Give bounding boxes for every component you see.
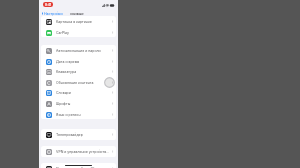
button[interactable]: Телепровайдер (41, 129, 116, 140)
staticText: Шрифты (56, 102, 110, 106)
button[interactable]: Язык и регион (41, 109, 116, 119)
button[interactable]: VPN и управление устройств… (41, 146, 116, 157)
staticText: Дата и время (56, 60, 110, 64)
button[interactable]: Дата и время (41, 56, 116, 67)
staticText: VPN и управление устройств… (56, 150, 110, 154)
button[interactable]: Клавиатура (41, 66, 116, 77)
staticText: Клавиатура (56, 70, 110, 74)
staticText: 9:41 (45, 3, 52, 7)
staticText: Телепровайдер (56, 133, 110, 137)
staticText: CarPlay (56, 31, 110, 35)
staticText: Картинка в картинке (56, 20, 110, 24)
button[interactable]: Автозаполнение и пароли (41, 45, 116, 56)
button[interactable]: Настройки (41, 11, 63, 16)
staticText: Обновление контента (56, 81, 110, 85)
button[interactable]: Перенос или сброс iPhone (41, 163, 116, 168)
button[interactable]: Картинка в картинке (41, 16, 116, 27)
staticText: Перенос или сброс iPhone (56, 167, 110, 168)
staticText: Основные (70, 12, 84, 15)
button[interactable]: Словари (41, 87, 116, 98)
button[interactable]: CarPlay (41, 27, 116, 37)
staticText: Словари (56, 91, 110, 95)
button[interactable]: Обновление контента (41, 77, 116, 88)
staticText: Настройки (44, 12, 63, 16)
staticText: Автозаполнение и пароли (56, 49, 110, 53)
staticText: Язык и регион (56, 113, 110, 117)
button[interactable]: Шрифты (41, 98, 116, 109)
